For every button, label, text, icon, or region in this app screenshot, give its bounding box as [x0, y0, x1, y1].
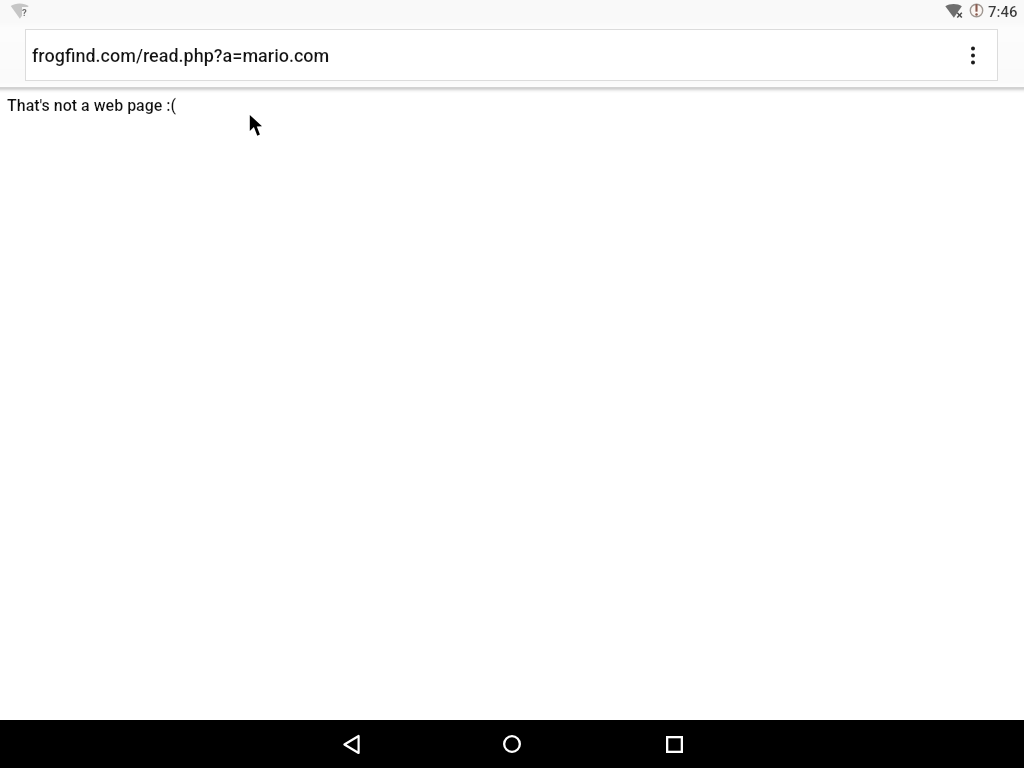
- button[interactable]: Back: [327, 720, 375, 768]
- staticText: 7:46: [988, 3, 1018, 21]
- button[interactable]: More options: [948, 30, 998, 80]
- button[interactable]: Address bar: [25, 29, 998, 81]
- staticText: frogfind.com/read.php?a=mario.com: [32, 45, 330, 66]
- button[interactable]: Recent apps: [650, 720, 698, 768]
- button[interactable]: Home: [488, 720, 536, 768]
- staticText: That's not a web page :(: [7, 96, 177, 115]
- staticText: ?: [22, 7, 27, 18]
